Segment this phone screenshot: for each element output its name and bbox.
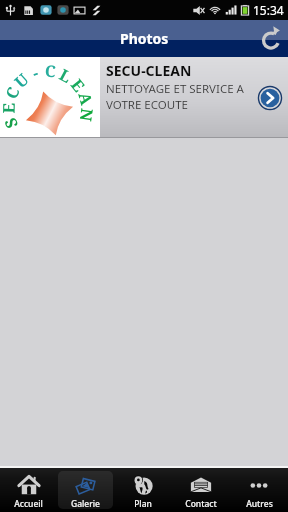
button[interactable]: Refresh <box>258 26 284 52</box>
staticText: - <box>29 62 40 80</box>
button[interactable]: Autres <box>231 471 287 509</box>
staticText: Photos <box>120 29 169 48</box>
staticText: Plan <box>134 498 152 509</box>
button[interactable]: Accueil <box>1 471 56 509</box>
button[interactable]: Open SECU-CLEAN <box>250 57 288 137</box>
button[interactable]: Contact <box>173 471 229 509</box>
staticText: U <box>9 68 30 90</box>
button[interactable]: S <box>0 57 288 137</box>
staticText: S <box>0 116 19 132</box>
staticText: C <box>0 83 21 101</box>
staticText: SECU-CLEAN <box>106 61 192 80</box>
button[interactable]: Plan <box>115 471 171 509</box>
staticText: Accueil <box>14 498 43 509</box>
staticText: VOTRE ECOUTE <box>106 97 188 113</box>
staticText: Galerie <box>71 498 100 509</box>
staticText: E <box>69 74 90 94</box>
staticText: L <box>57 63 76 85</box>
staticText: C <box>44 60 57 78</box>
staticText: Autres <box>246 498 273 509</box>
staticText: E <box>0 102 16 114</box>
staticText: 15:34 <box>253 2 284 18</box>
staticText: A <box>77 89 98 107</box>
button[interactable]: Galerie <box>58 471 113 509</box>
staticText: N <box>79 107 98 123</box>
staticText: Contact <box>185 498 217 509</box>
staticText: NETTOYAGE ET SERVICE A <box>106 81 244 97</box>
